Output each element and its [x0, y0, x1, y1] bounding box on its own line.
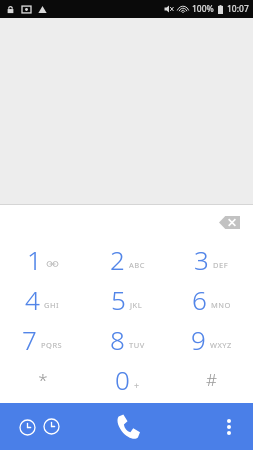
staticText: PQRS [41, 340, 63, 350]
staticText: 7 [22, 322, 37, 357]
staticText: 1 [27, 242, 42, 277]
staticText: TUV [129, 340, 145, 350]
button[interactable]: # [169, 359, 253, 399]
staticText: 3 [194, 242, 209, 277]
staticText: 2 [110, 242, 125, 277]
button[interactable]: 5 [85, 279, 169, 319]
button[interactable]: * [0, 359, 85, 399]
staticText: WXYZ [210, 340, 232, 350]
button[interactable]: 2 [85, 239, 169, 279]
staticText: 9 [191, 322, 206, 357]
button[interactable]: More options [217, 415, 241, 439]
staticText: 4 [25, 282, 40, 317]
button[interactable]: 9 [169, 319, 253, 359]
staticText: 10:07 [227, 3, 249, 15]
button[interactable]: 7 [0, 319, 85, 359]
button[interactable]: Call history [14, 414, 40, 440]
button[interactable]: 4 [0, 279, 85, 319]
staticText: # [206, 368, 217, 391]
staticText: * [38, 368, 48, 391]
staticText: MNO [211, 300, 231, 310]
button[interactable]: 6 [169, 279, 253, 319]
staticText: 8 [110, 322, 125, 357]
staticText: 6 [192, 282, 207, 317]
button[interactable]: 8 [85, 319, 169, 359]
staticText: JKL [130, 300, 143, 310]
button[interactable]: 1 [0, 239, 85, 279]
staticText: ABC [129, 260, 145, 270]
button[interactable]: Call history [0, 403, 253, 450]
staticText: + [134, 379, 140, 391]
staticText: 0 [115, 362, 130, 397]
staticText: GHI [44, 300, 60, 310]
staticText: 5 [111, 282, 126, 317]
button[interactable]: 3 [169, 239, 253, 279]
button[interactable]: 0 [85, 359, 169, 399]
button[interactable]: Backspace [211, 210, 247, 234]
button[interactable]: Call [105, 405, 149, 449]
staticText: DEF [213, 260, 229, 270]
staticText: 100% [192, 3, 214, 15]
